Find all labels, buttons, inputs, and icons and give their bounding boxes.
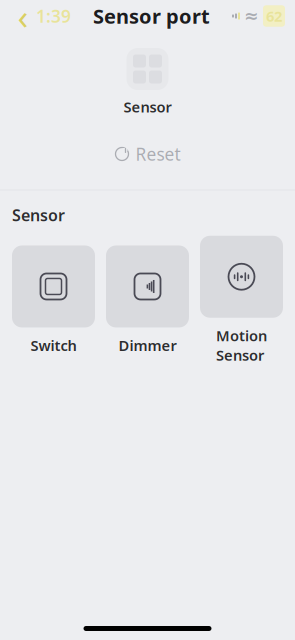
staticText: ‹ [17,0,28,39]
staticText: Sensor [12,204,65,226]
button[interactable]: Dimmer [106,245,189,355]
staticText: Motion Sensor [216,326,267,365]
button[interactable]: Motion Sensor [200,236,283,365]
staticText: Reset [135,142,180,165]
button[interactable]: Back [10,3,36,29]
staticText: 62 [266,6,282,26]
staticText: ≈ [244,6,259,26]
button[interactable]: Switch [12,245,95,355]
staticText: Sensor [123,97,171,116]
staticText: Switch [30,335,76,355]
button[interactable]: Reset [100,136,194,171]
staticText: Dimmer [118,335,176,355]
staticText: Sensor port [93,3,210,29]
staticText: 1:39 [36,4,71,27]
